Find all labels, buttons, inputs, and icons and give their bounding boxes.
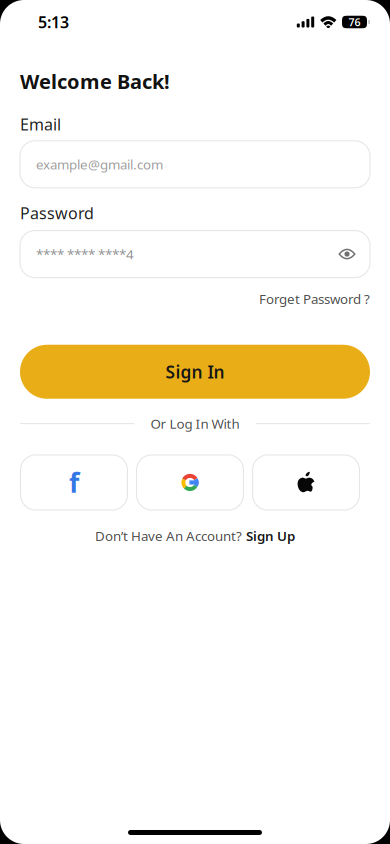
staticText: example@gmail.com — [36, 155, 163, 173]
button[interactable]: Sign in with Google — [136, 455, 243, 510]
staticText: Password — [20, 202, 94, 223]
staticText: Email — [20, 114, 61, 135]
button[interactable]: Show password — [338, 247, 356, 262]
staticText: 76 — [348, 15, 360, 29]
button[interactable]: Sign in with Apple — [253, 455, 359, 510]
staticText: Or Log In With — [150, 415, 239, 432]
button[interactable]: Sign in with Facebook — [20, 455, 127, 510]
staticText: Forget Password ? — [259, 290, 370, 308]
button[interactable]: Sign In — [20, 345, 370, 399]
button[interactable]: Sign Up — [246, 527, 295, 545]
staticText: f — [69, 465, 79, 500]
staticText: Sign In — [165, 360, 224, 383]
button[interactable]: Forget Password ? — [259, 290, 370, 308]
staticText: 5:13 — [38, 11, 69, 33]
staticText: Welcome Back! — [20, 68, 170, 95]
staticText: **** **** ****4 — [36, 245, 134, 263]
staticText: Sign Up — [246, 527, 295, 545]
staticText: Don’t Have An Account? — [95, 527, 242, 545]
